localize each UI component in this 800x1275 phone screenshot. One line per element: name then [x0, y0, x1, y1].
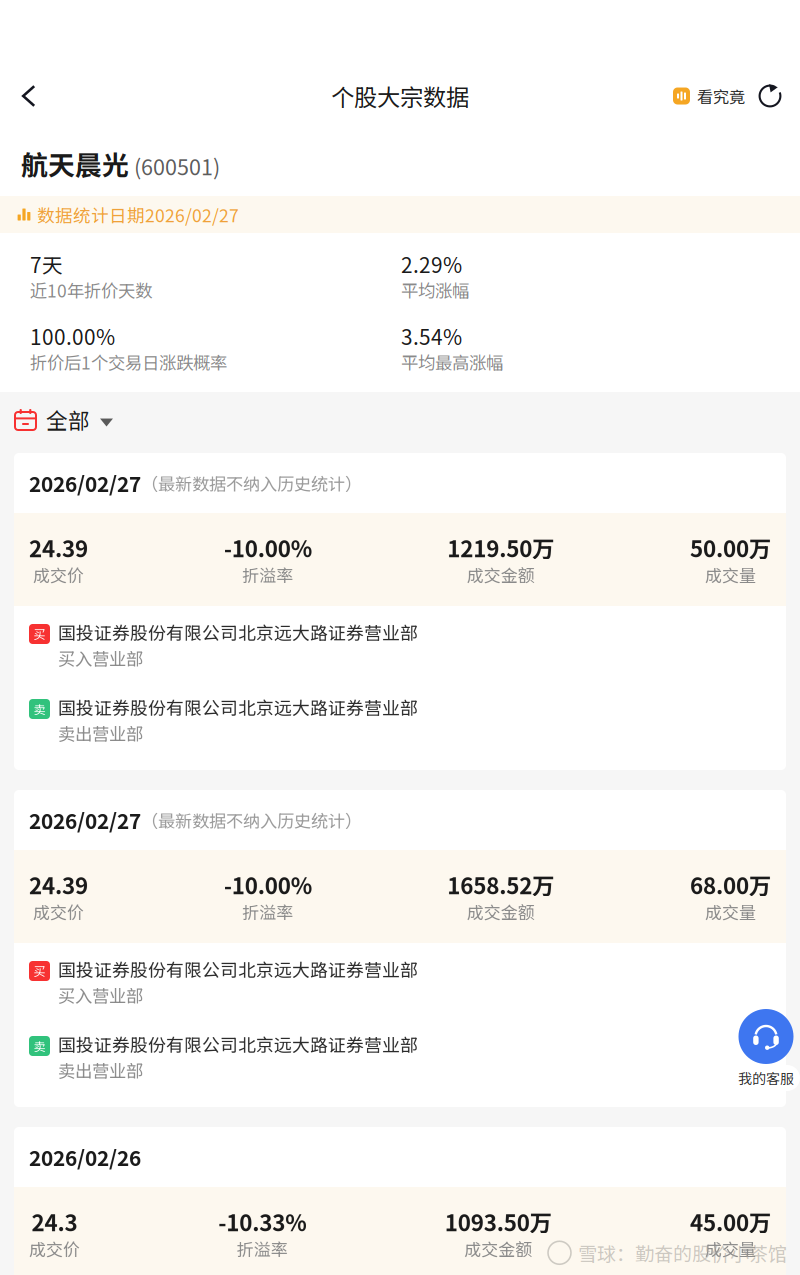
- staticText: 航天晨光: [21, 144, 129, 183]
- button[interactable]: 看究竟: [673, 70, 758, 122]
- staticText: 成交价: [33, 899, 84, 924]
- staticText: 2026/02/27: [29, 468, 141, 498]
- staticText: 买入营业部: [58, 982, 143, 1007]
- staticText: 我的客服: [738, 1068, 794, 1088]
- staticText: 100.00%: [30, 321, 115, 351]
- staticText: 看究竟: [697, 84, 745, 108]
- staticText: 近10年折价天数: [30, 277, 152, 303]
- staticText: 成交量: [705, 1236, 756, 1261]
- staticText: 24.39: [29, 531, 88, 564]
- staticText: 成交价: [29, 1236, 80, 1261]
- staticText: （最新数据不纳入历史统计）: [141, 807, 362, 832]
- staticText: 折溢率: [242, 899, 293, 924]
- staticText: (600501): [129, 150, 220, 181]
- staticText: -10.00%: [224, 868, 312, 901]
- staticText: 卖出营业部: [58, 1057, 143, 1082]
- staticText: 卖出营业部: [58, 720, 143, 745]
- staticText: 24.3: [31, 1205, 77, 1238]
- staticText: 68.00万: [690, 868, 771, 901]
- staticText: 国投证券股份有限公司北京远大路证券营业部: [58, 694, 418, 720]
- staticText: 24.39: [29, 868, 88, 901]
- staticText: 平均最高涨幅: [401, 349, 503, 375]
- staticText: 1219.50万: [447, 531, 554, 564]
- staticText: 45.00万: [690, 1205, 771, 1238]
- staticText: 成交金额: [467, 562, 535, 587]
- staticText: 50.00万: [690, 531, 771, 564]
- staticText: 平均涨幅: [401, 277, 469, 303]
- staticText: -10.00%: [224, 531, 312, 564]
- staticText: 2026/02/27: [29, 805, 141, 835]
- staticText: 1658.52万: [447, 868, 554, 901]
- staticText: 国投证券股份有限公司北京远大路证券营业部: [58, 1031, 418, 1057]
- staticText: 雪球：勤奋的股价小茶馆: [578, 1239, 787, 1266]
- staticText: 卖: [33, 700, 45, 718]
- staticText: 7天: [30, 249, 63, 279]
- staticText: 折溢率: [237, 1236, 288, 1261]
- staticText: 买入营业部: [58, 645, 143, 670]
- button[interactable]: 全部: [0, 392, 800, 453]
- staticText: -10.33%: [218, 1205, 306, 1238]
- staticText: 数据统计日期2026/02/27: [37, 202, 239, 227]
- button[interactable]: 返回: [3, 70, 55, 122]
- staticText: 成交价: [33, 562, 84, 587]
- staticText: 买: [33, 962, 45, 980]
- staticText: 2026/02/26: [29, 1142, 141, 1172]
- staticText: 买: [33, 625, 45, 643]
- button[interactable]: 刷新: [758, 70, 797, 122]
- staticText: 折价后1个交易日涨跌概率: [30, 349, 227, 375]
- staticText: 卖: [33, 1037, 45, 1055]
- staticText: 国投证券股份有限公司北京远大路证券营业部: [58, 956, 418, 982]
- button[interactable]: 我的客服: [732, 1009, 800, 1091]
- staticText: 折溢率: [242, 562, 293, 587]
- staticText: 全部: [46, 404, 90, 435]
- staticText: 3.54%: [401, 321, 462, 351]
- staticText: 成交量: [705, 562, 756, 587]
- staticText: 成交金额: [467, 899, 535, 924]
- staticText: （最新数据不纳入历史统计）: [141, 470, 362, 495]
- staticText: 成交量: [705, 899, 756, 924]
- staticText: 2.29%: [401, 249, 462, 279]
- staticText: 成交金额: [464, 1236, 532, 1261]
- staticText: 1093.50万: [445, 1205, 552, 1238]
- staticText: 个股大宗数据: [331, 79, 469, 113]
- staticText: 国投证券股份有限公司北京远大路证券营业部: [58, 619, 418, 645]
